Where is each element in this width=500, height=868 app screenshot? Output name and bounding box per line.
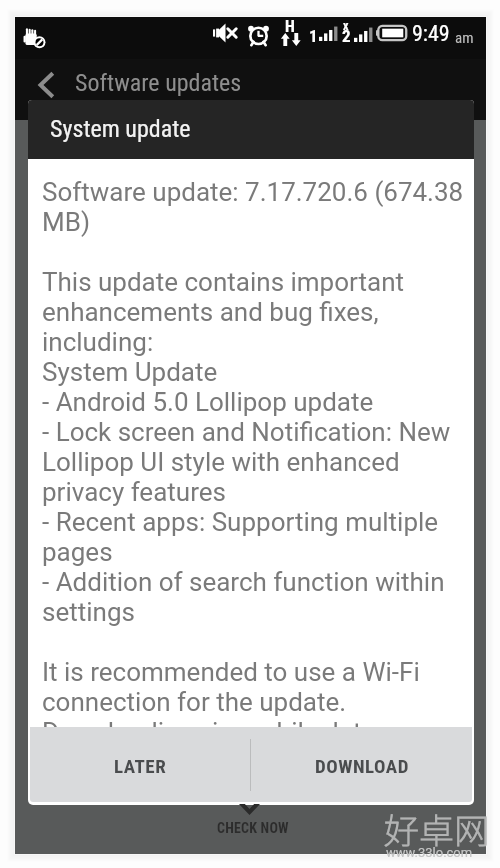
staticText: x [343, 19, 349, 33]
other: Do not disturb [21, 23, 49, 49]
staticText: This update contains important enhanceme… [42, 267, 474, 627]
button[interactable]: Back [31, 65, 61, 105]
button[interactable]: LATER [30, 727, 250, 802]
staticText: Software update: 7.17.720.6 (674.38 MB) [42, 177, 474, 237]
staticText: CHECK NOW [217, 820, 289, 836]
button[interactable]: DOWNLOAD [251, 727, 472, 802]
staticText: Software updates [75, 69, 242, 97]
staticText: H [285, 17, 295, 36]
staticText: LATER [114, 755, 167, 777]
staticText: System update [50, 115, 191, 143]
staticText: DOWNLOAD [315, 755, 409, 777]
staticText: am [455, 29, 474, 47]
staticText: 2 [342, 26, 351, 46]
staticText: 9:49 [412, 21, 450, 47]
staticText: www.33lo.com [386, 845, 473, 860]
staticText: 1 [309, 26, 318, 46]
staticText: It is recommended to use a Wi-Fi connect… [42, 657, 474, 745]
staticText: 好卓网 [384, 803, 490, 854]
